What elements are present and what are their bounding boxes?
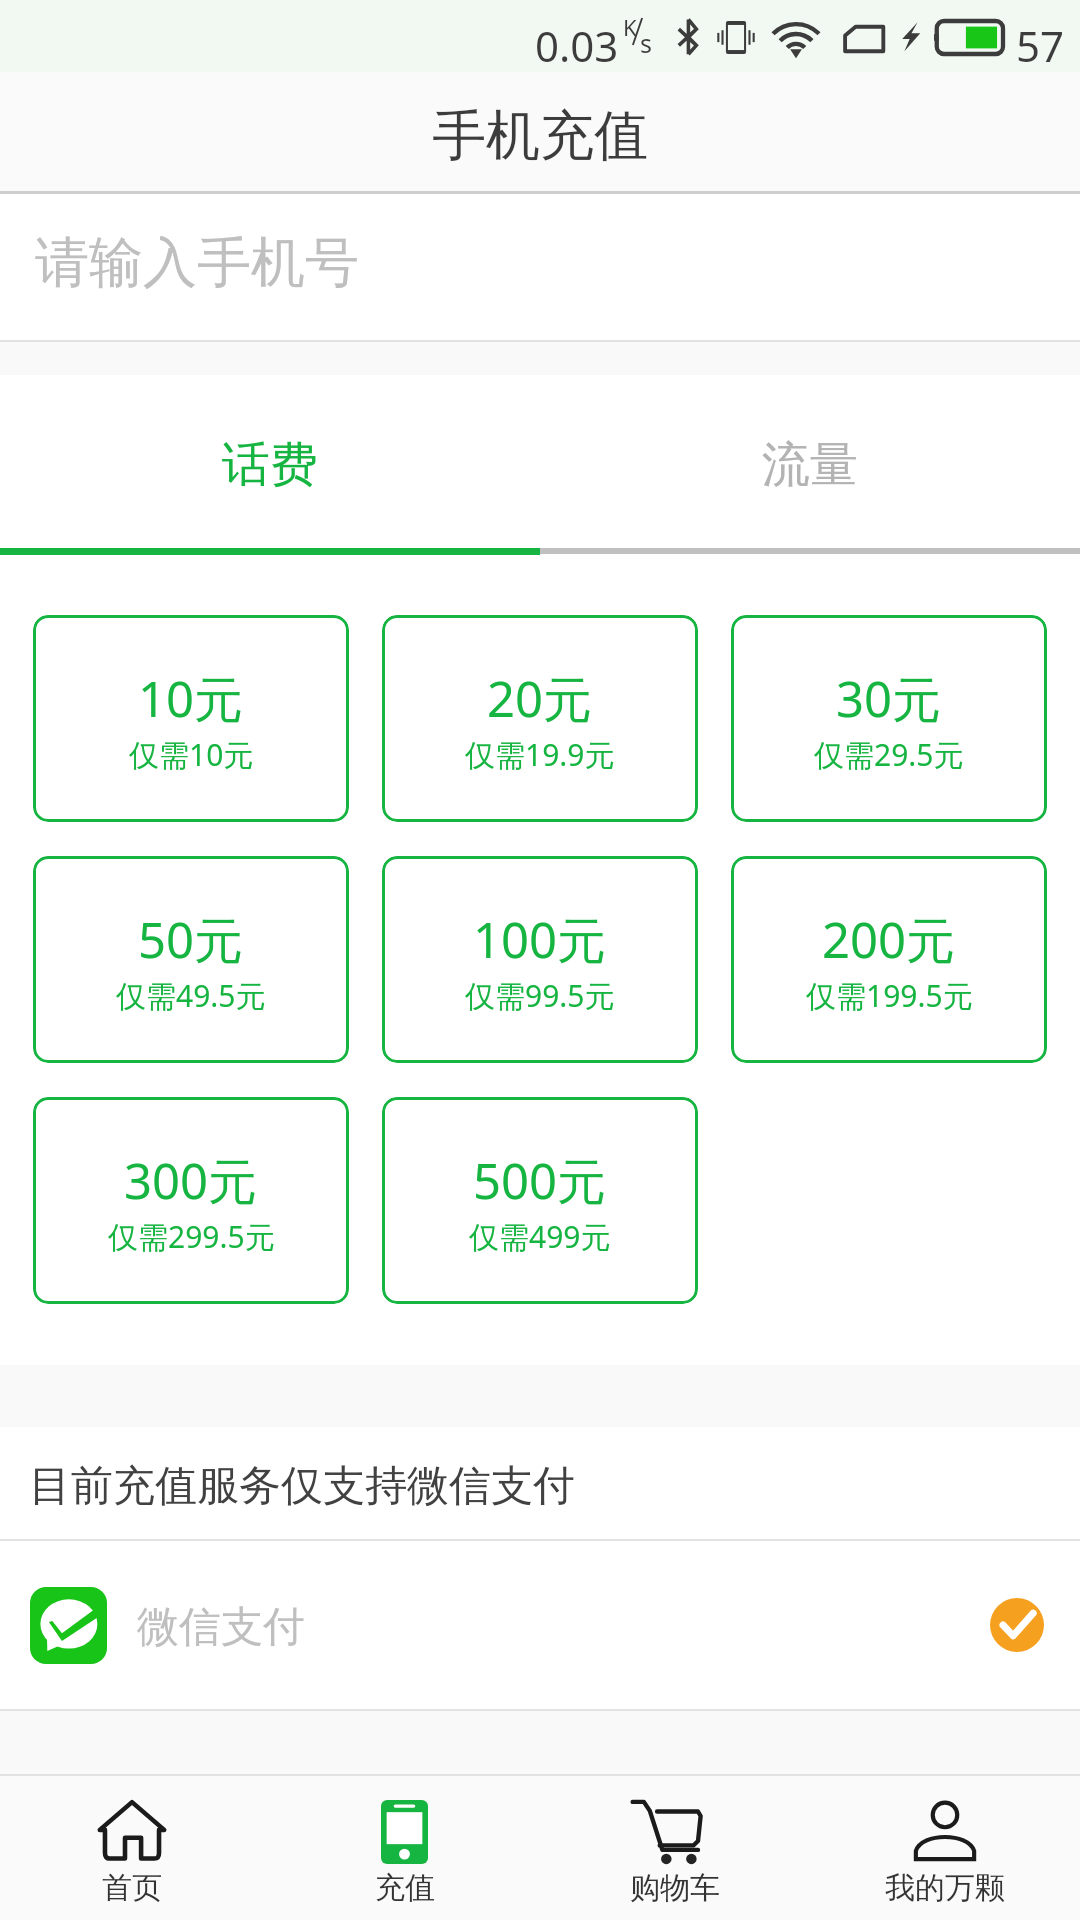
button[interactable]: 微信支付 (0, 1541, 1080, 1709)
staticText: K (623, 12, 637, 42)
staticText: 目前充值服务仅支持微信支付 (29, 1460, 575, 1513)
staticText: 购物车 (630, 1869, 720, 1907)
button[interactable]: 50元 (33, 856, 349, 1063)
button[interactable]: 我的万颗 (810, 1776, 1080, 1920)
staticText: 充值 (375, 1869, 435, 1907)
staticText: 200元 (822, 906, 956, 973)
staticText: 仅需19.9元 (465, 734, 615, 775)
staticText: 话费 (222, 435, 318, 495)
staticText: s (640, 26, 652, 60)
staticText: 仅需499元 (469, 1216, 611, 1257)
button[interactable]: 30元 (731, 615, 1047, 822)
button[interactable]: 20元 (382, 615, 698, 822)
staticText: 20元 (487, 665, 593, 732)
staticText: 仅需29.5元 (814, 734, 964, 775)
staticText: 仅需299.5元 (108, 1216, 275, 1257)
staticText: 30元 (836, 665, 942, 732)
staticText: 微信支付 (137, 1601, 305, 1654)
button[interactable]: 充值 (270, 1776, 540, 1920)
button[interactable]: 300元 (33, 1097, 349, 1304)
staticText: 300元 (124, 1147, 258, 1214)
button[interactable]: 话费 (0, 375, 540, 555)
button[interactable]: WeChat Pay selected (990, 1598, 1044, 1652)
staticText: 50元 (138, 906, 244, 973)
button[interactable]: 10元 (33, 615, 349, 822)
staticText: 500元 (473, 1147, 607, 1214)
button[interactable]: 首页 (0, 1776, 270, 1920)
staticText: 我的万颗 (885, 1869, 1005, 1907)
staticText: 流量 (762, 435, 858, 495)
button[interactable]: 100元 (382, 856, 698, 1063)
button[interactable]: 流量 (540, 375, 1080, 555)
staticText: 仅需49.5元 (116, 975, 266, 1016)
staticText: 仅需10元 (129, 734, 254, 775)
staticText: 100元 (473, 906, 607, 973)
staticText: 0.03 (535, 17, 619, 74)
staticText: 10元 (138, 665, 244, 732)
button[interactable]: 200元 (731, 856, 1047, 1063)
staticText: 请输入手机号 (35, 229, 359, 297)
button[interactable]: 500元 (382, 1097, 698, 1304)
button[interactable]: 请输入手机号 (0, 194, 1080, 340)
staticText: 仅需99.5元 (465, 975, 615, 1016)
button[interactable]: 购物车 (540, 1776, 810, 1920)
staticText: 仅需199.5元 (806, 975, 973, 1016)
staticText: 57 (1016, 17, 1065, 74)
staticText: 手机充值 (432, 102, 648, 170)
staticText: 首页 (102, 1869, 162, 1907)
